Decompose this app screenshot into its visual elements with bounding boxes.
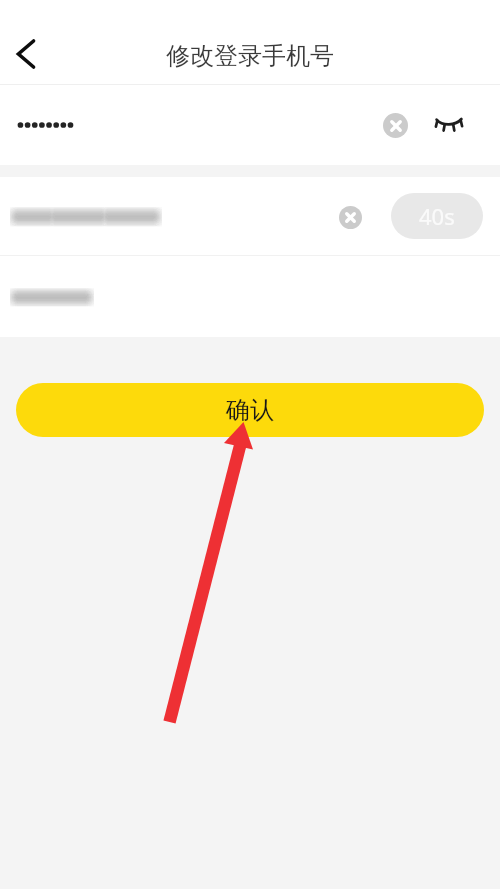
staticText: 修改登录手机号 [166, 41, 334, 71]
button[interactable]: Clear password [371, 101, 419, 149]
button[interactable]: Clear phone number [326, 193, 374, 241]
button[interactable]: 40s [391, 193, 483, 239]
button[interactable]: Back [4, 32, 48, 76]
button[interactable]: Show password [427, 103, 471, 147]
staticText: 确认 [226, 395, 274, 425]
button[interactable]: 确认 [16, 383, 484, 437]
staticText: 40s [419, 201, 455, 231]
